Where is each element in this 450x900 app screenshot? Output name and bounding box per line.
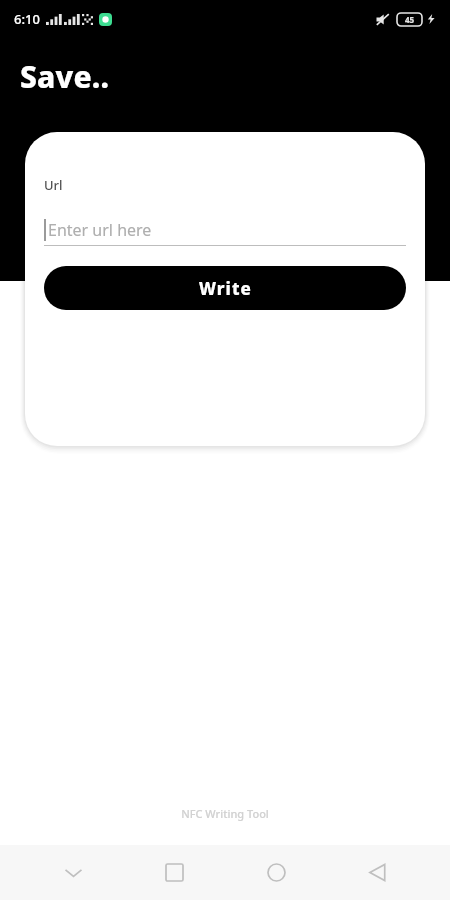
staticText: Save..: [20, 56, 110, 97]
staticText: Enter url here: [48, 219, 152, 241]
staticText: Url: [44, 176, 63, 194]
button[interactable]: Write: [44, 266, 406, 310]
button[interactable]: Enter url here: [44, 213, 406, 246]
button[interactable]: Home: [248, 845, 304, 900]
staticText: 6:10: [14, 10, 40, 28]
button[interactable]: Back: [349, 845, 405, 900]
staticText: NFC Writing Tool: [181, 806, 269, 821]
staticText: 45: [405, 14, 415, 25]
staticText: Write: [199, 277, 252, 300]
button[interactable]: Recents: [146, 845, 202, 900]
button[interactable]: Hide keyboard: [45, 845, 101, 900]
other: Silent: [375, 12, 390, 27]
